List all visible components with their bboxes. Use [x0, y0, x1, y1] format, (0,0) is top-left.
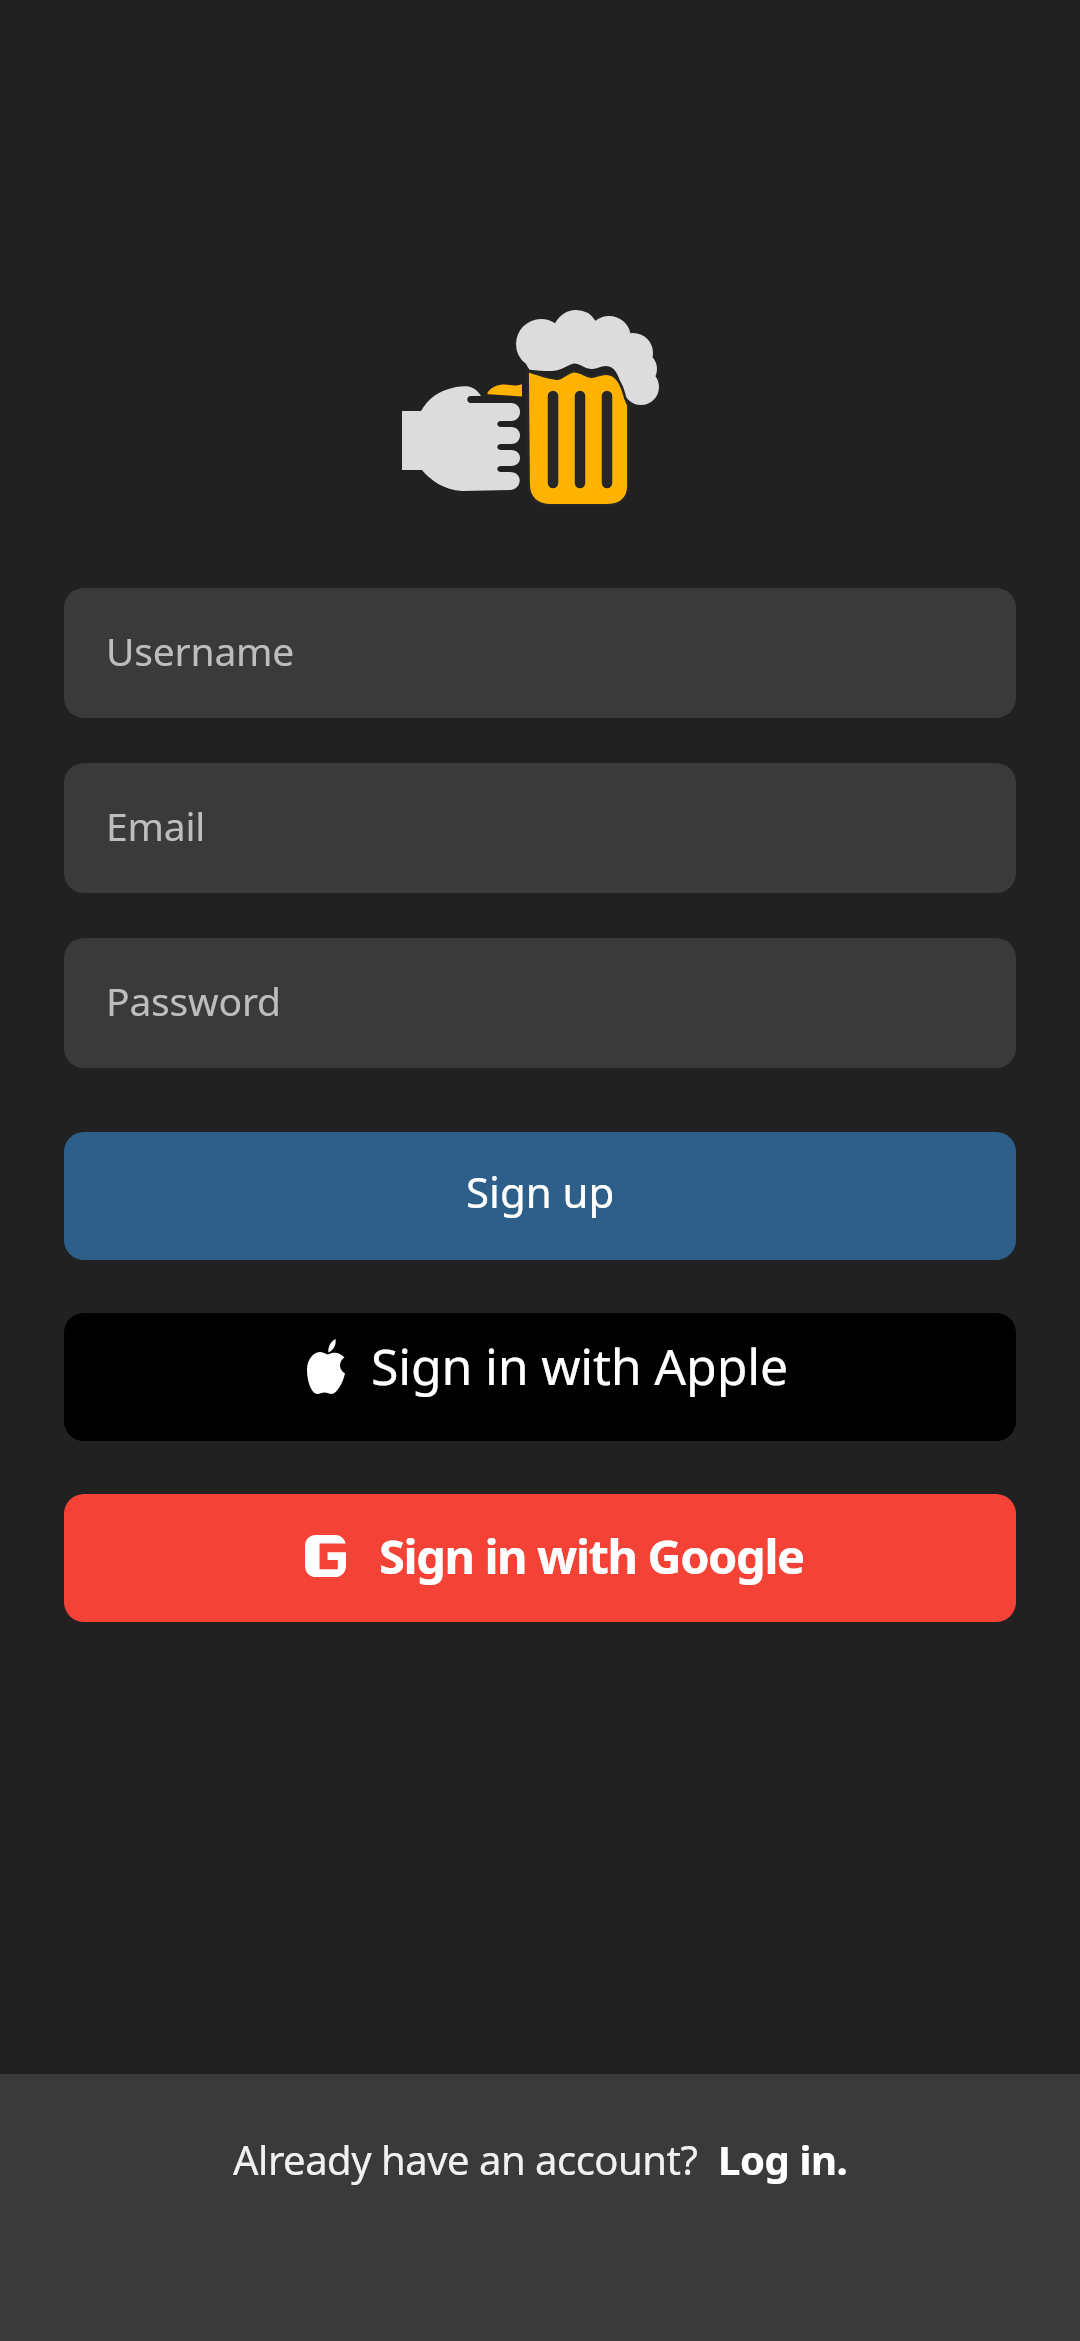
staticText: Sign in with Apple [371, 1332, 788, 1400]
button[interactable]: Sign in with Apple [64, 1313, 1016, 1441]
staticText: Username [106, 624, 295, 677]
button[interactable]: Sign in with Google [64, 1494, 1016, 1622]
staticText: Sign up [466, 1163, 615, 1220]
staticText: Email [106, 799, 206, 852]
button[interactable]: Sign up [64, 1132, 1016, 1260]
staticText: Log in. [718, 2132, 848, 2186]
button[interactable]: Password [64, 938, 1016, 1068]
staticText: Already have an account? [233, 2132, 698, 2186]
button[interactable]: Already have an account? [233, 2132, 848, 2186]
button[interactable]: Email [64, 763, 1016, 893]
staticText: Sign in with Google [379, 1524, 804, 1588]
staticText: Password [106, 974, 281, 1027]
button[interactable]: Username [64, 588, 1016, 718]
